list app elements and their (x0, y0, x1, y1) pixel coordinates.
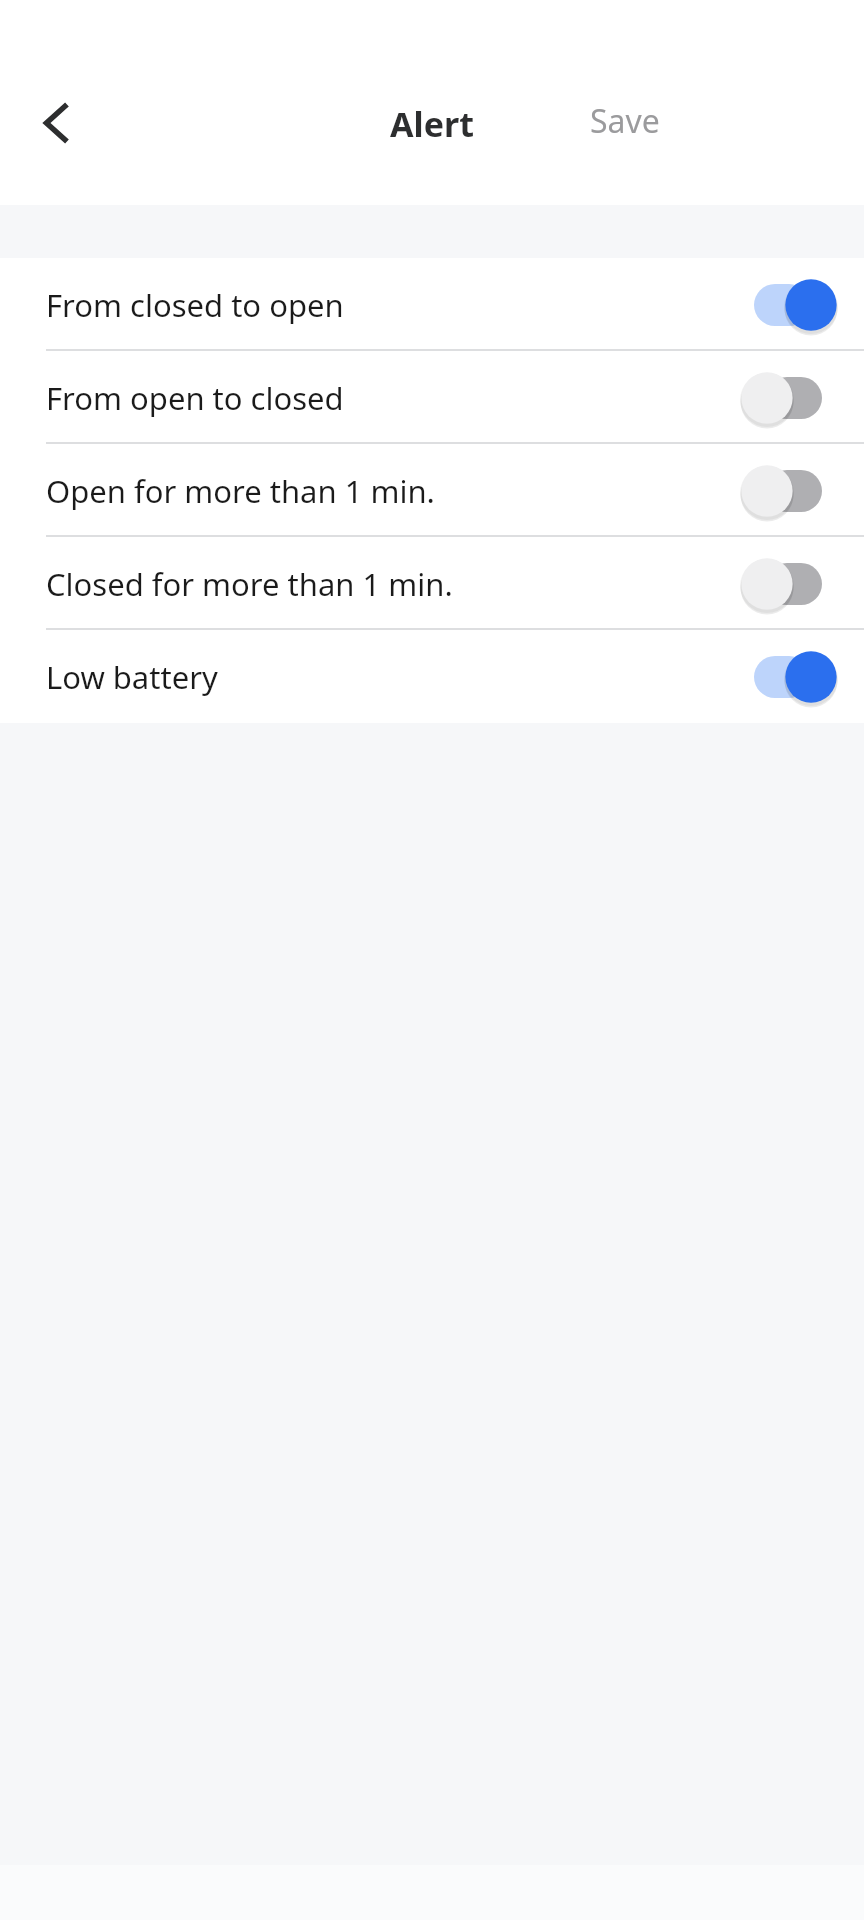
button[interactable]: Back (14, 80, 100, 166)
button[interactable]: From open to closed (0, 351, 864, 444)
button[interactable]: Save (566, 85, 684, 157)
staticText: From closed to open (46, 284, 740, 326)
staticText: From open to closed (46, 377, 740, 419)
staticText: Open for more than 1 min. (46, 470, 740, 512)
button[interactable]: Open for more than 1 min. (0, 444, 864, 537)
button[interactable]: Closed for more than 1 min. (0, 537, 864, 630)
button[interactable]: From closed to open (0, 258, 864, 351)
staticText: Low battery (46, 656, 740, 698)
staticText: Save (590, 99, 660, 143)
button[interactable]: Low battery (0, 630, 864, 723)
staticText: Closed for more than 1 min. (46, 563, 740, 605)
staticText: Alert (0, 101, 864, 147)
